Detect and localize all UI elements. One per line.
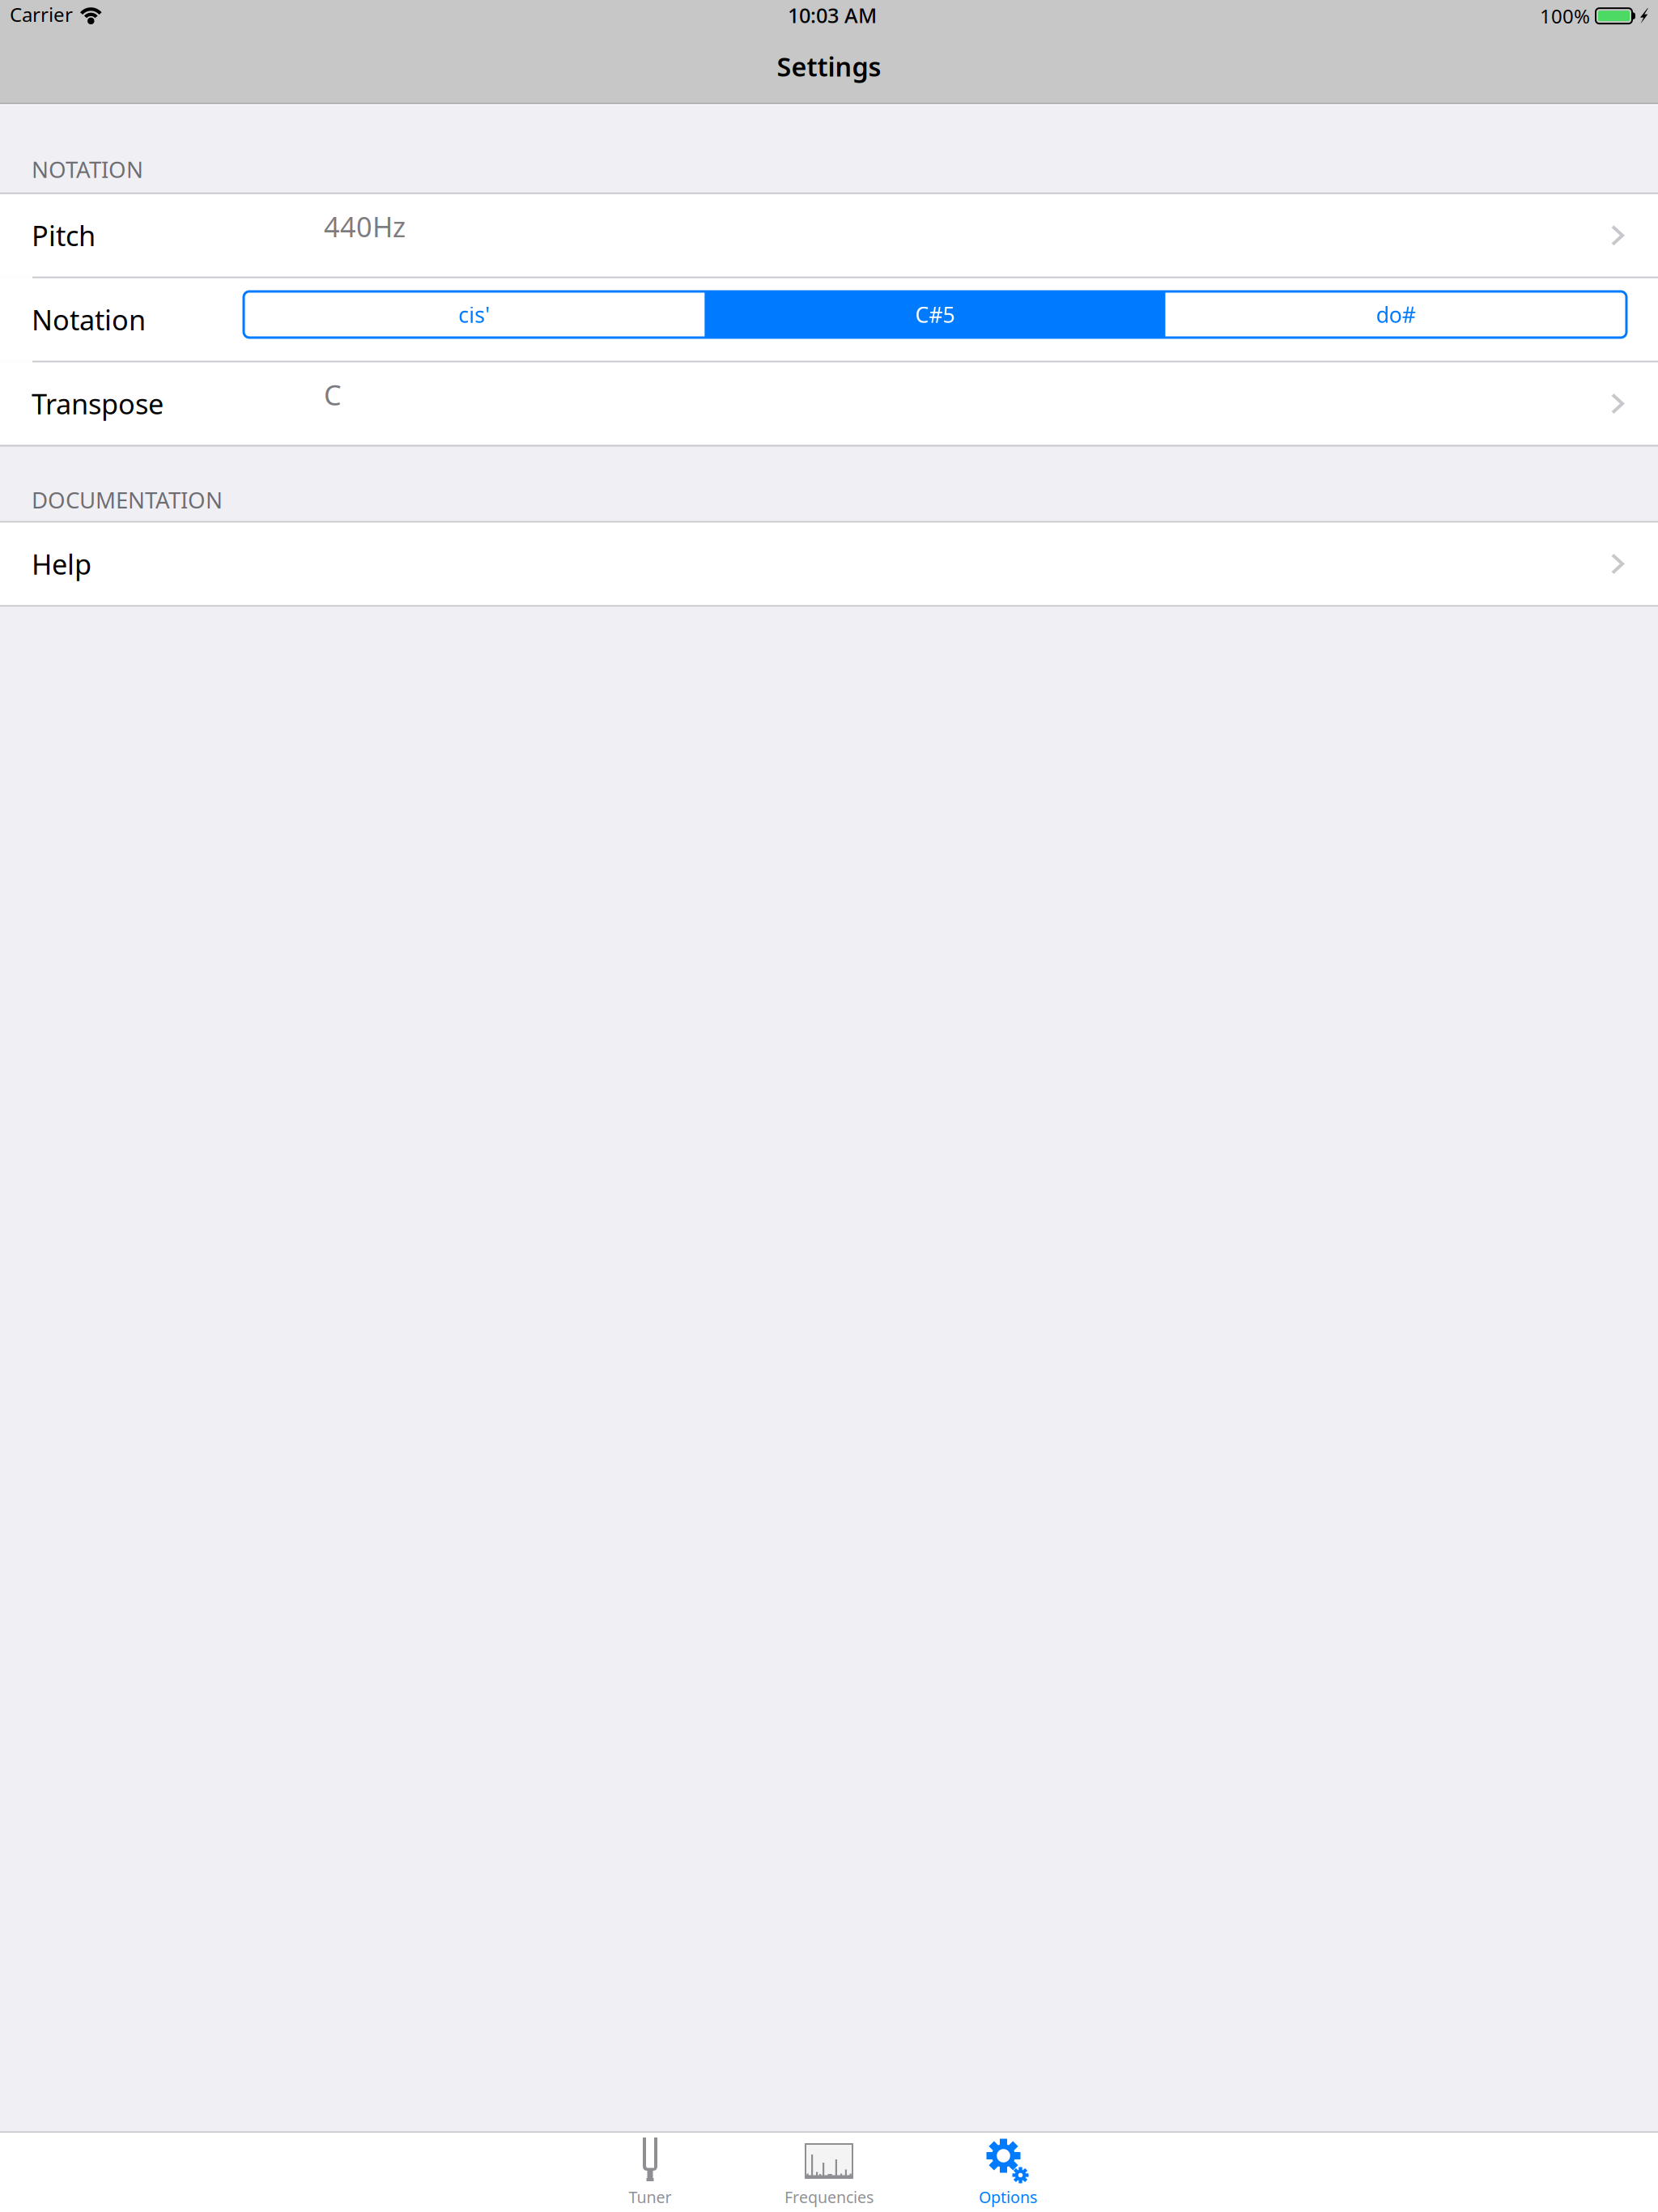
- button[interactable]: cis': [244, 291, 705, 338]
- staticText: cis': [458, 300, 490, 329]
- button[interactable]: Transpose: [0, 362, 1658, 445]
- staticText: Transpose: [32, 385, 164, 423]
- staticText: 10:03 AM: [788, 1, 877, 29]
- button[interactable]: do#: [1166, 291, 1626, 338]
- staticText: Options: [979, 2186, 1037, 2208]
- staticText: C#5: [915, 300, 955, 329]
- button[interactable]: Options: [918, 2133, 1097, 2212]
- button[interactable]: Frequencies: [740, 2133, 918, 2212]
- staticText: Tuner: [629, 2186, 672, 2208]
- staticText: do#: [1376, 300, 1416, 329]
- staticText: Carrier: [10, 1, 73, 28]
- staticText: C: [324, 376, 342, 414]
- button[interactable]: C#5: [705, 291, 1165, 338]
- staticText: NOTATION: [32, 154, 143, 184]
- staticText: Notation: [32, 301, 146, 338]
- staticText: Settings: [777, 49, 881, 84]
- staticText: Pitch: [32, 217, 96, 254]
- staticText: DOCUMENTATION: [32, 485, 223, 515]
- staticText: 100%: [1540, 3, 1590, 29]
- staticText: 440Hz: [324, 208, 406, 245]
- staticText: Frequencies: [784, 2186, 874, 2208]
- button[interactable]: Tuner: [561, 2133, 740, 2212]
- button[interactable]: Help: [0, 523, 1658, 605]
- button[interactable]: Pitch: [0, 194, 1658, 277]
- staticText: Help: [32, 545, 91, 583]
